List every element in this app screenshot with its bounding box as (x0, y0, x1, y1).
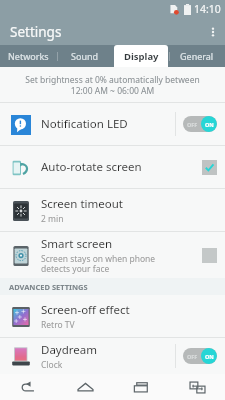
staticText: Networks (8, 50, 49, 62)
staticText: 2 min (41, 213, 64, 225)
button[interactable]: Toggle (183, 116, 217, 132)
staticText: Screen-off effect (41, 302, 130, 318)
staticText: Sound (71, 50, 99, 62)
staticText: Auto-rotate screen (41, 159, 142, 175)
button[interactable]: Back (0, 374, 57, 400)
staticText: Clock (41, 359, 63, 371)
staticText: 14:10 (194, 2, 221, 16)
button[interactable]: Screen timeout (0, 189, 225, 231)
button[interactable]: Recent apps (113, 374, 169, 400)
button[interactable]: Auto-rotate screen (0, 146, 225, 188)
staticText: ON (205, 121, 214, 128)
staticText: OFF (187, 121, 198, 128)
staticText: Display (124, 50, 159, 63)
button[interactable]: Daydream (0, 338, 225, 374)
button[interactable]: Notification LED (0, 103, 225, 145)
staticText: Daydream (41, 342, 97, 358)
staticText: General (180, 50, 214, 62)
button[interactable]: Auto-rotate checkbox (202, 160, 217, 175)
staticText: Screen stays on when phone detects your … (41, 253, 156, 274)
button[interactable]: Smart screen (0, 232, 225, 278)
staticText: Screen timeout (41, 196, 123, 212)
staticText: Set brightness at 0% automatically betwe… (25, 74, 200, 96)
button[interactable]: Dual window (169, 374, 225, 400)
button[interactable]: Display (113, 45, 169, 67)
button[interactable]: General (169, 45, 225, 67)
button[interactable]: Networks (0, 45, 57, 67)
staticText: ON (205, 353, 214, 360)
button[interactable]: More options (201, 20, 225, 44)
button[interactable]: Toggle (183, 348, 217, 364)
staticText: Settings (10, 23, 62, 41)
staticText: Retro TV (41, 319, 75, 331)
staticText: Notification LED (41, 116, 128, 132)
button[interactable]: Screen-off effect (0, 295, 225, 337)
button[interactable]: Home (57, 374, 113, 400)
staticText: Smart screen (41, 236, 113, 252)
button[interactable]: Sound (57, 45, 113, 67)
staticText: ADVANCED SETTINGS (9, 282, 88, 292)
staticText: OFF (187, 353, 198, 360)
